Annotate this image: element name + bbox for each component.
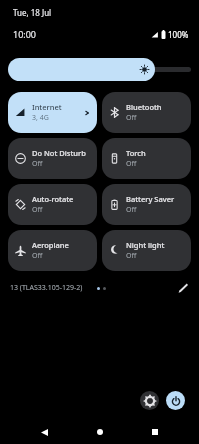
staticText: 13 (TLAS33.105-129-2)	[10, 283, 83, 293]
staticText: Torch	[126, 148, 146, 158]
button[interactable]: Internet	[8, 92, 97, 133]
staticText: Off	[126, 159, 137, 169]
button[interactable]: Auto-rotate	[8, 184, 97, 225]
button[interactable]	[8, 58, 191, 81]
staticText: 100%	[168, 29, 189, 40]
button[interactable]: Torch	[102, 138, 191, 179]
staticText: Bluetooth	[126, 102, 162, 112]
staticText: Off	[126, 113, 137, 123]
staticText: 10:00	[13, 28, 37, 40]
staticText: 3, 4G	[32, 113, 49, 123]
staticText: Off	[126, 205, 137, 215]
button[interactable]: Edit tiles	[175, 280, 191, 296]
staticText: Off	[32, 205, 43, 215]
button[interactable]: Battery Saver	[102, 184, 191, 225]
button[interactable]: Recents	[144, 422, 166, 442]
staticText: Off	[126, 251, 137, 261]
button[interactable]: Settings	[140, 391, 159, 410]
staticText: Off	[32, 251, 43, 261]
staticText: Internet	[32, 102, 62, 112]
button[interactable]: Home	[89, 422, 111, 442]
button[interactable]: Aeroplane mode	[8, 230, 97, 271]
staticText: Aeroplane mode	[32, 240, 90, 250]
button[interactable]: Night light	[102, 230, 191, 271]
button[interactable]: Power	[166, 391, 185, 410]
staticText: Off	[32, 159, 43, 169]
staticText: Tue, 18 Jul	[13, 7, 52, 18]
staticText: Night light	[126, 240, 165, 250]
staticText: Battery Saver	[126, 194, 175, 204]
button[interactable]: Do Not Disturb	[8, 138, 97, 179]
staticText: Do Not Disturb	[32, 148, 86, 158]
staticText: Auto-rotate	[32, 194, 74, 204]
button[interactable]: Back	[33, 422, 55, 442]
button[interactable]: Bluetooth	[102, 92, 191, 133]
